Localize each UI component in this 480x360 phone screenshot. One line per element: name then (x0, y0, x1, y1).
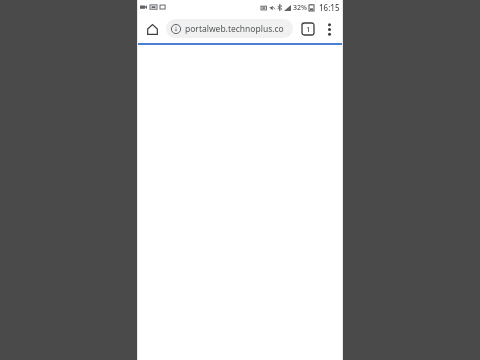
staticText: 32% (293, 3, 307, 13)
staticText: 1 (306, 24, 311, 34)
button[interactable]: Home (141, 18, 163, 40)
staticText: portalweb.technoplus.com.br (185, 23, 288, 35)
button[interactable]: portalweb.technoplus.com.br (166, 19, 293, 38)
staticText: 16:15 (319, 2, 340, 13)
button[interactable]: Switch tabs, 1 open tab (297, 18, 318, 39)
button[interactable]: More options (319, 19, 339, 39)
